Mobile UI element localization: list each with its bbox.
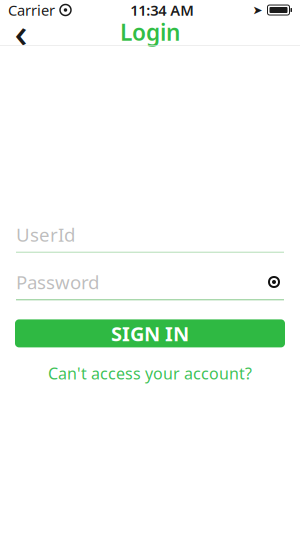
staticText: UserId	[16, 222, 75, 247]
staticText: Password	[16, 270, 99, 294]
staticText: Login	[120, 17, 180, 47]
button[interactable]: Back	[4, 17, 38, 47]
staticText: 11:34 AM	[130, 0, 194, 20]
staticText: ➤	[252, 3, 262, 17]
button[interactable]: Can't access your account?	[16, 364, 284, 382]
staticText: ‹	[14, 5, 27, 58]
button[interactable]: SIGN IN	[15, 319, 285, 347]
staticText: Can't access your account?	[48, 363, 252, 384]
button[interactable]: Show password	[264, 272, 284, 292]
staticText: Carrier	[8, 0, 55, 20]
staticText: SIGN IN	[111, 320, 189, 347]
